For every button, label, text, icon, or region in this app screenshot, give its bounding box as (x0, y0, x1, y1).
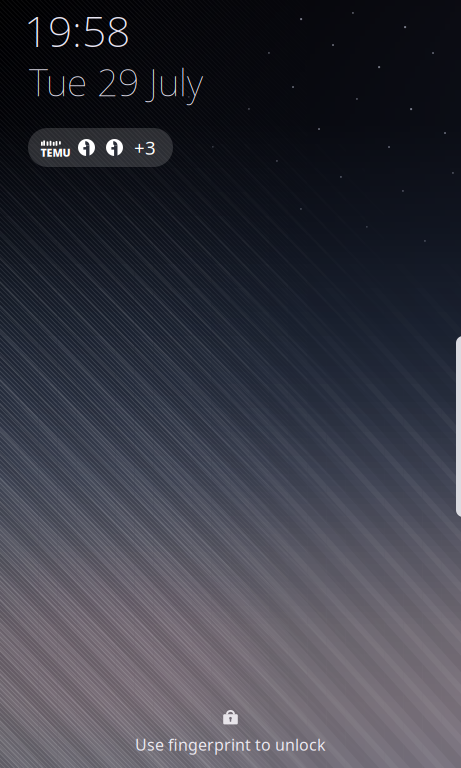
staticText: Tue 29 July (29, 57, 203, 107)
button[interactable]: TEMU (28, 128, 173, 167)
staticText: Use fingerprint to unlock (135, 734, 326, 755)
staticText: TEMU (40, 145, 70, 160)
staticText: +3 (134, 135, 156, 160)
staticText: 19:58 (24, 2, 130, 59)
